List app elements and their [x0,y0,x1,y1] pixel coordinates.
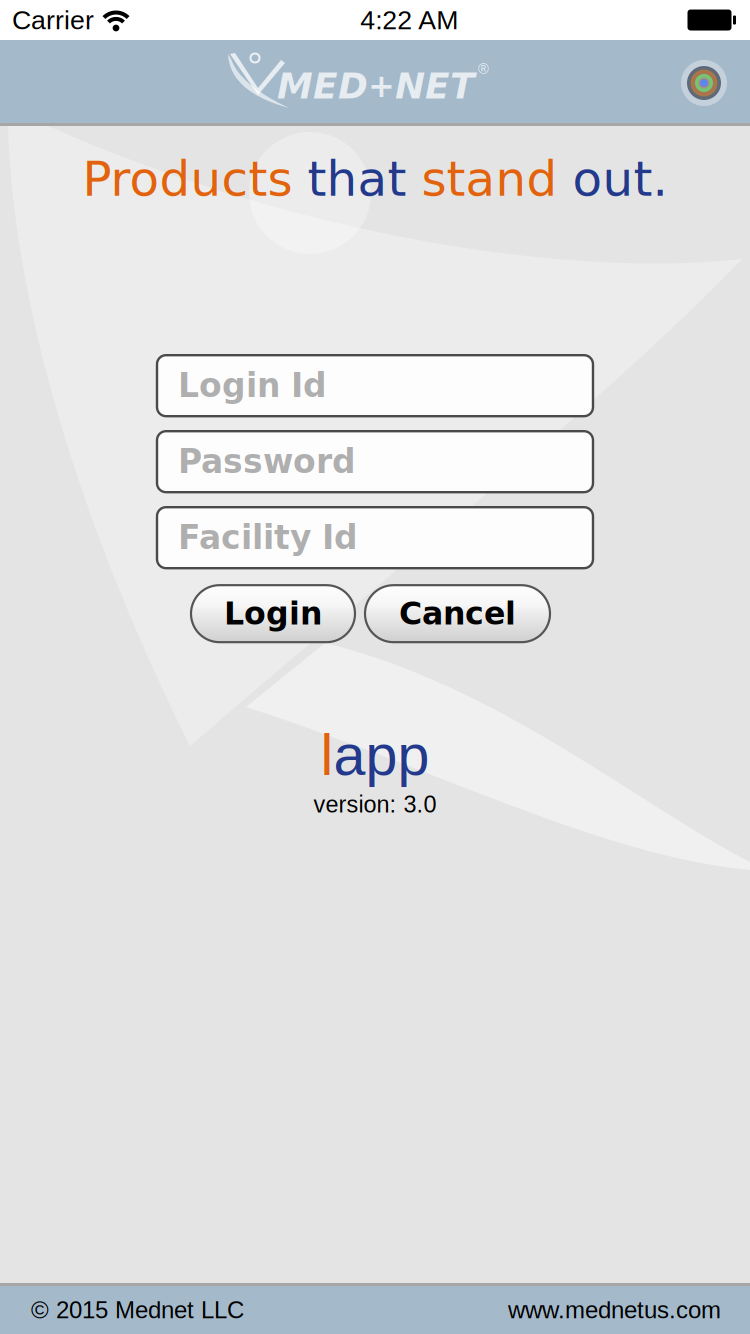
staticText: NET [395,65,475,107]
staticText: Password [178,442,356,481]
staticText: Carrier [12,5,94,35]
staticText: ® [478,61,489,77]
staticText: app [333,723,429,787]
button[interactable]: Cancel [365,585,550,642]
staticText: Products [82,151,307,207]
staticText: that [307,151,421,207]
button[interactable]: Account [680,59,750,107]
staticText: Login [224,595,322,632]
button[interactable]: Password [157,431,593,492]
staticText: l [320,723,333,787]
staticText: Facility Id [178,518,358,557]
button[interactable]: Login [191,585,355,642]
staticText: + [368,67,395,105]
staticText: version: 3.0 [313,791,436,817]
staticText: Login Id [178,366,327,405]
button[interactable]: Facility Id [157,507,593,568]
staticText: 4:22 AM [360,5,458,35]
staticText: MED [277,65,368,107]
staticText: Cancel [399,595,516,632]
staticText: stand [421,151,572,207]
staticText: www.mednetus.com [508,1297,721,1323]
staticText: out. [572,151,667,207]
button[interactable]: Login Id [157,355,593,416]
staticText: © 2015 Mednet LLC [31,1297,244,1323]
